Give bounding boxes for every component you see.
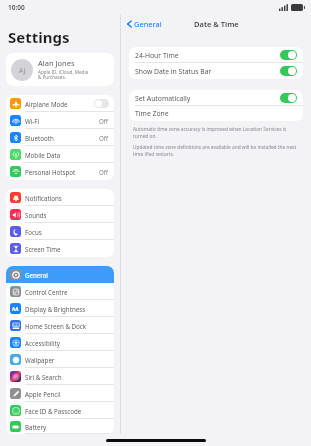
staticText: Sounds [25,211,109,219]
button[interactable]: General [6,266,114,283]
staticText: AA [12,306,19,312]
staticText: Off [99,134,109,142]
staticText: Accessibility [25,339,109,347]
button[interactable]: 24-Hour Time [129,47,303,63]
staticText: Time Zone [135,109,169,118]
button[interactable]: Screen Time [6,240,114,257]
staticText: Display & Brightness [25,305,109,313]
staticText: Wi-Fi [25,117,99,125]
button[interactable]: General [125,17,164,31]
button[interactable]: AJ [6,53,114,86]
staticText: Off [99,168,109,176]
staticText: Alan Jones [38,58,75,68]
staticText: Mobile Data [25,151,109,159]
staticText: AJ [19,66,26,75]
staticText: Settings [8,27,70,47]
button[interactable]: AA [6,300,114,317]
staticText: Airplane Mode [25,100,94,108]
staticText: Focus [25,228,109,236]
button[interactable]: Wi-Fi [6,112,114,129]
staticText: 24-Hour Time [135,51,179,60]
button[interactable]: Bluetooth [6,129,114,146]
button[interactable]: Siri & Search [6,368,114,385]
button[interactable]: Sounds [6,206,114,223]
staticText: Updated time zone definitions are availa… [133,144,297,157]
button[interactable]: Set Automatically [129,90,303,106]
button[interactable]: 24-Hour Time toggle [280,50,297,60]
button[interactable]: Mobile Data [6,146,114,163]
button[interactable]: Show Date in Status Bar toggle [280,66,297,76]
staticText: Automatic time zone accuracy is improved… [133,126,287,139]
button[interactable]: Focus [6,223,114,240]
button[interactable]: Personal Hotspot [6,163,114,180]
staticText: Wallpaper [25,356,109,364]
staticText: Set Automatically [135,94,191,103]
staticText: Control Centre [25,288,109,296]
staticText: Notifications [25,194,109,202]
staticText: Off [99,117,109,125]
staticText: Home Screen & Dock [25,322,109,330]
button[interactable]: Airplane Mode [6,95,114,112]
staticText: Apple ID, iCloud, Media & Purchases. [38,69,89,81]
staticText: Apple Pencil [25,390,109,398]
staticText: Show Date in Status Bar [135,67,212,76]
button[interactable]: Wallpaper [6,351,114,368]
button[interactable]: Accessibility [6,334,114,351]
staticText: 10:00 [8,3,25,12]
button[interactable]: Show Date in Status Bar [129,63,303,79]
staticText: Bluetooth [25,134,99,142]
staticText: Date & Time [194,19,239,29]
button[interactable]: Airplane Mode toggle [94,99,109,108]
staticText: Battery [25,423,109,431]
staticText: Personal Hotspot [25,168,99,176]
button[interactable]: Notifications [6,189,114,206]
button[interactable]: Set Automatically toggle [280,93,297,103]
staticText: General [25,271,109,279]
staticText: Face ID & Passcode [25,407,109,415]
button[interactable]: Control Centre [6,283,114,300]
staticText: General [134,19,162,29]
button[interactable]: Apple Pencil [6,385,114,402]
button[interactable]: Battery [6,419,114,434]
button[interactable]: Time Zone [129,106,303,121]
button[interactable]: Face ID & Passcode [6,402,114,419]
staticText: Screen Time [25,245,109,253]
button[interactable]: Home Screen & Dock [6,317,114,334]
staticText: Siri & Search [25,373,109,381]
